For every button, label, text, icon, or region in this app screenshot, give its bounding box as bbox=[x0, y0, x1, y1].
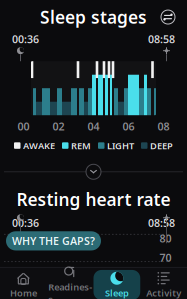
staticText: Sleep bbox=[105, 287, 129, 299]
staticText: 00:36 bbox=[12, 32, 39, 46]
button[interactable]: Readiness bbox=[48, 270, 92, 299]
staticText: Resting heart rate bbox=[16, 188, 170, 211]
staticText: 00:36 bbox=[12, 216, 39, 230]
staticText: 02 bbox=[52, 119, 64, 133]
staticText: DEEP bbox=[150, 139, 173, 152]
staticText: Activity bbox=[146, 287, 181, 299]
staticText: 04 bbox=[87, 119, 99, 133]
staticText: 06 bbox=[122, 119, 134, 133]
button[interactable]: Chart options bbox=[157, 6, 179, 28]
button[interactable]: Activity bbox=[142, 270, 186, 299]
staticText: REM bbox=[71, 139, 91, 152]
staticText: WHY THE GAPS? bbox=[12, 234, 95, 248]
button[interactable]: Collapse sleep stages bbox=[81, 160, 105, 184]
button[interactable]: Sleep bbox=[93, 270, 140, 299]
button[interactable]: Home bbox=[1, 270, 45, 299]
staticText: 00 bbox=[17, 119, 29, 133]
staticText: 80 bbox=[160, 231, 172, 245]
staticText: LIGHT bbox=[107, 139, 134, 152]
button[interactable]: WHY THE GAPS? bbox=[6, 231, 101, 250]
staticText: AWAKE bbox=[23, 139, 55, 152]
staticText: 70 bbox=[160, 250, 172, 265]
staticText: Sleep stages bbox=[40, 5, 147, 28]
staticText: 08:58 bbox=[148, 32, 175, 46]
staticText: Home bbox=[10, 287, 37, 299]
staticText: Readiness bbox=[48, 281, 92, 299]
staticText: 08 bbox=[157, 119, 169, 133]
staticText: 08:58 bbox=[148, 216, 175, 230]
